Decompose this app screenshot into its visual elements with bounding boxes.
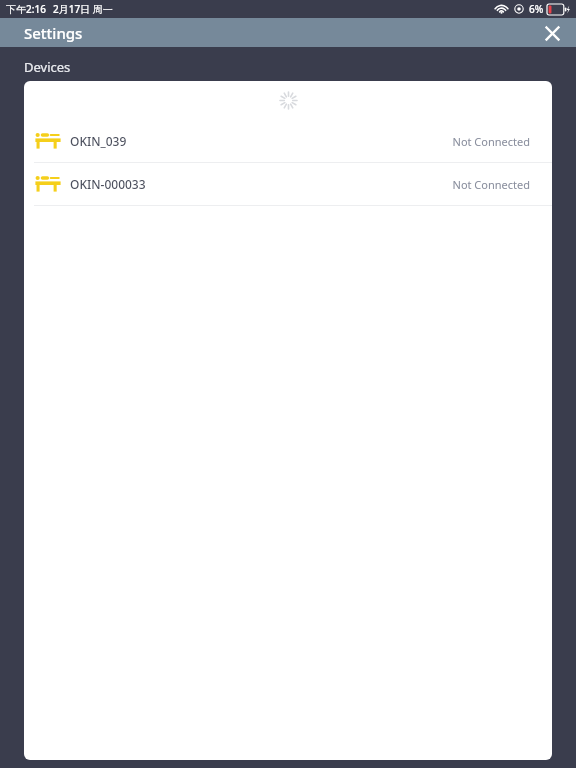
button[interactable]: OKIN_039 — [24, 120, 552, 162]
staticText: 2月17日 周一 — [53, 2, 113, 16]
staticText: 下午2:16 — [6, 2, 46, 16]
staticText: Not Connected — [452, 177, 530, 192]
button[interactable]: Close — [538, 19, 566, 47]
staticText: 6% — [529, 2, 544, 16]
staticText: Not Connected — [452, 134, 530, 149]
button[interactable]: OKIN-000033 — [24, 163, 552, 205]
staticText: OKIN_039 — [70, 133, 127, 149]
staticText: Devices — [24, 58, 71, 76]
staticText: Settings — [24, 23, 83, 43]
staticText: OKIN-000033 — [70, 176, 146, 192]
